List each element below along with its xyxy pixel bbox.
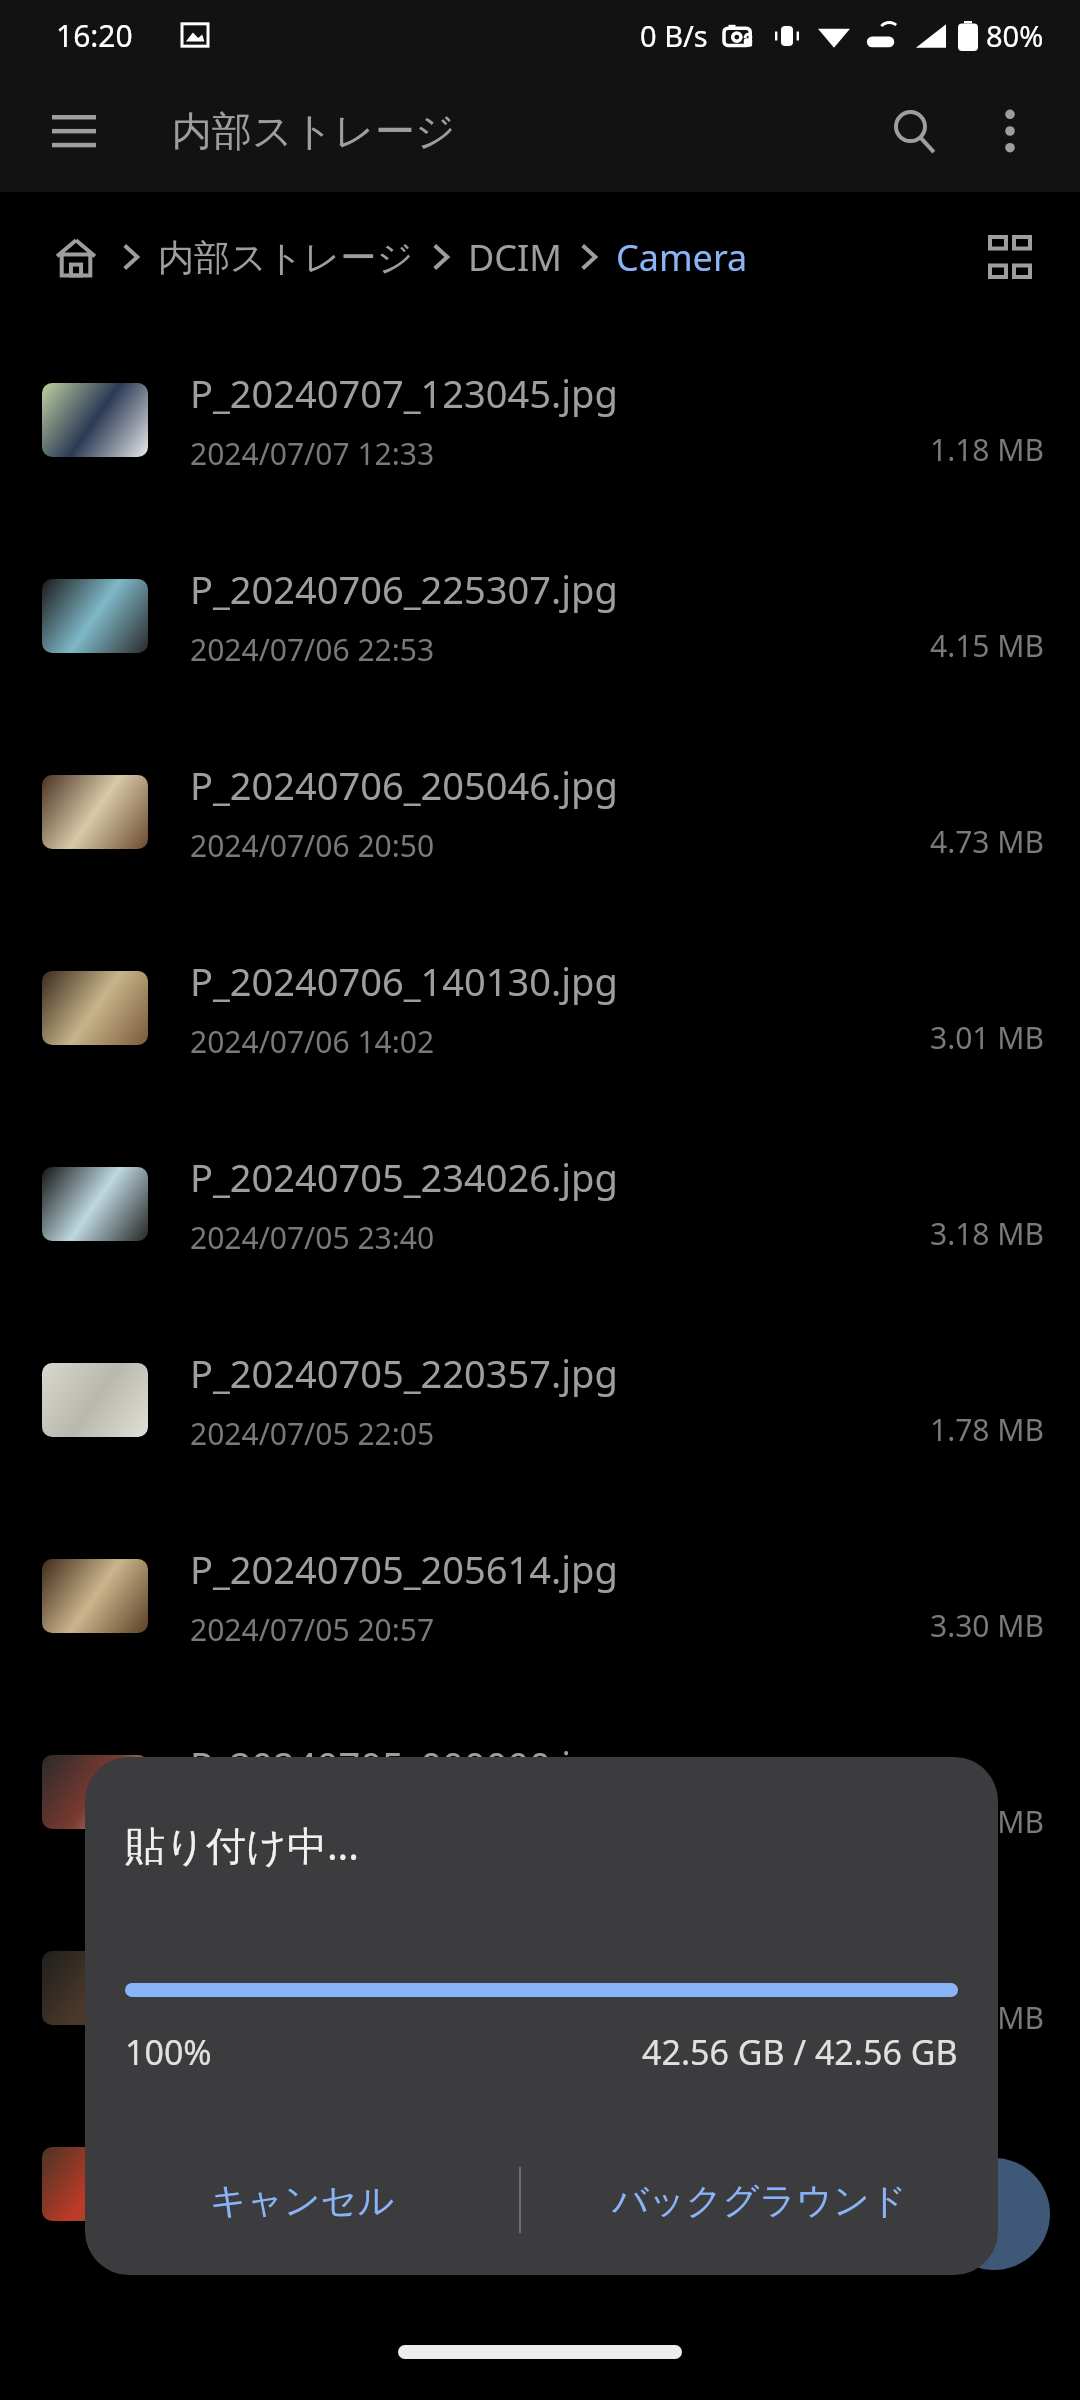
button[interactable]: Menu	[30, 87, 118, 175]
staticText: 4.15 MB	[929, 625, 1044, 666]
button[interactable]: DCIM	[468, 233, 562, 282]
button[interactable]: P_20240705_205614.jpg	[0, 1498, 1080, 1694]
staticText: 2024/07/04 21:05	[190, 2197, 435, 2238]
staticText: 16:20	[56, 15, 133, 56]
button[interactable]: Grid view	[970, 217, 1050, 297]
staticText: P_20240705_234026.jpg	[190, 1151, 618, 1203]
button[interactable]: 内部ストレージ	[158, 235, 414, 280]
staticText: 2024/07/05 23:40	[190, 1217, 435, 1258]
staticText: バックグラウンド	[612, 2178, 907, 2223]
staticText: 2024/07/05 20:57	[190, 1609, 435, 1650]
staticText: 2024/07/07 12:33	[190, 433, 435, 474]
button[interactable]: More options	[962, 83, 1058, 179]
button[interactable]: Search	[866, 83, 962, 179]
button[interactable]: キャンセル	[85, 2125, 519, 2275]
staticText: 2024/07/05 00:00	[190, 1805, 435, 1846]
staticText: 2024/07/06 20:50	[190, 825, 435, 866]
staticText: P_20240705_205614.jpg	[190, 1543, 618, 1595]
button[interactable]: P_20240706_205046.jpg	[0, 714, 1080, 910]
staticText: 2.90 MB	[929, 1801, 1044, 1842]
staticText: P_20240704_233000.jpg	[190, 1935, 618, 1987]
staticText: 2024/07/06 14:02	[190, 1021, 435, 1062]
staticText: 100%	[125, 2029, 212, 2075]
staticText: P_20240706_225307.jpg	[190, 563, 618, 615]
staticText: 内部ストレージ	[172, 106, 456, 156]
staticText: 貼り付け中...	[125, 1817, 360, 1872]
button[interactable]: P_20240705_000000.jpg	[0, 1694, 1080, 1890]
button[interactable]: P_20240704_210500.jpg	[0, 2086, 1080, 2282]
staticText: 4.73 MB	[929, 821, 1044, 862]
button[interactable]: P_20240707_123045.jpg	[0, 322, 1080, 518]
staticText: P_20240706_140130.jpg	[190, 955, 618, 1007]
button[interactable]: Add	[938, 2158, 1050, 2270]
button[interactable]: バックグラウンド	[521, 2125, 998, 2275]
staticText: 80%	[986, 16, 1044, 55]
staticText: 2024/07/05 22:05	[190, 1413, 435, 1454]
button[interactable]: P_20240706_225307.jpg	[0, 518, 1080, 714]
button[interactable]: P_20240704_233000.jpg	[0, 1890, 1080, 2086]
staticText: 1.18 MB	[929, 429, 1044, 470]
staticText: 3.30 MB	[929, 1605, 1044, 1646]
staticText: P_20240705_000000.jpg	[190, 1739, 618, 1791]
staticText: 0 B/s	[640, 16, 708, 55]
staticText: P_20240705_220357.jpg	[190, 1347, 618, 1399]
staticText: 2024/07/04 23:30	[190, 2001, 435, 2042]
staticText: 3.60 MB	[929, 1997, 1044, 2038]
staticText: P_20240706_205046.jpg	[190, 759, 618, 811]
staticText: 4.10 MB	[929, 2193, 1044, 2234]
staticText: 2024/07/06 22:53	[190, 629, 435, 670]
staticText: キャンセル	[210, 2178, 395, 2223]
staticText: P_20240707_123045.jpg	[190, 367, 618, 419]
button[interactable]: P_20240705_220357.jpg	[0, 1302, 1080, 1498]
staticText: 42.56 GB / 42.56 GB	[642, 2029, 958, 2075]
button[interactable]: P_20240705_234026.jpg	[0, 1106, 1080, 1302]
button[interactable]: Home	[48, 229, 104, 285]
staticText: 1.78 MB	[929, 1409, 1044, 1450]
button[interactable]: P_20240706_140130.jpg	[0, 910, 1080, 1106]
staticText: 3.18 MB	[929, 1213, 1044, 1254]
button[interactable]: Camera	[616, 233, 748, 282]
staticText: 3.01 MB	[929, 1017, 1044, 1058]
